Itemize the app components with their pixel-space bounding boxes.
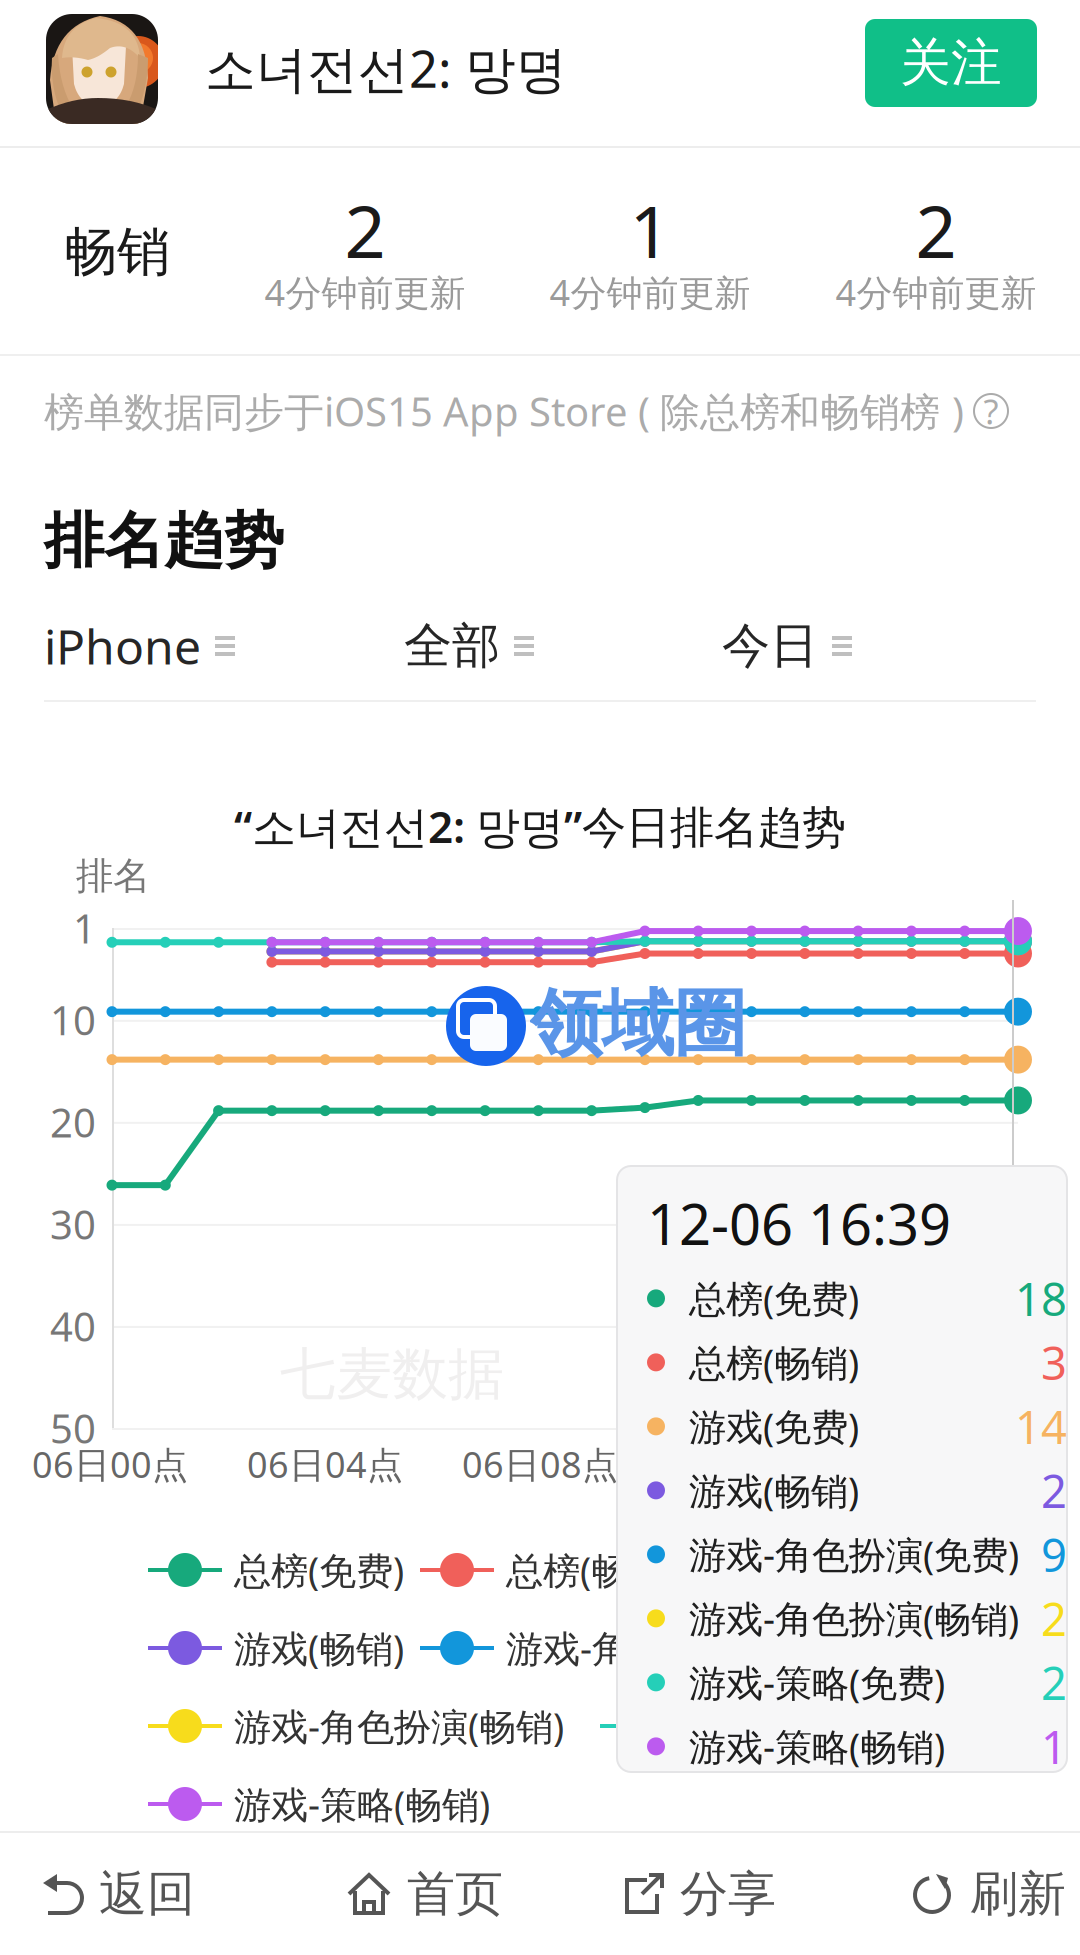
staticText: 返回 xyxy=(99,1864,195,1923)
staticText: 3 xyxy=(1041,1332,1067,1392)
staticText: 50 xyxy=(50,1401,96,1454)
staticText: ? xyxy=(983,388,998,434)
staticText: 06日00点 xyxy=(32,1440,188,1488)
staticText: 总榜(畅销) xyxy=(506,1545,676,1595)
staticText: 七麦数据 xyxy=(280,1340,504,1409)
staticText: 游戏-策略(免费) xyxy=(689,1658,945,1707)
staticText: 2 xyxy=(1041,1652,1067,1712)
button[interactable]: 关注 xyxy=(865,19,1037,107)
staticText: 游戏-角色扮演(畅销) xyxy=(689,1594,1019,1643)
staticText: 游戏-角色扮演(免费) xyxy=(689,1530,1019,1579)
staticText: 1 xyxy=(629,182,670,278)
staticText: 소녀전선2: 망명 xyxy=(205,34,567,102)
staticText: 畅销 xyxy=(64,219,170,285)
staticText: iPhone xyxy=(44,614,201,678)
staticText: 游戏-策略(畅销) xyxy=(689,1722,945,1771)
staticText: 10 xyxy=(50,993,96,1046)
staticText: 4分钟前更新 xyxy=(549,268,750,316)
staticText: 榜单数据同步于iOS15 App Store ( 除总榜和畅销榜 ) xyxy=(44,384,964,437)
staticText: 总榜(畅销) xyxy=(689,1338,859,1387)
staticText: 2 xyxy=(1041,1588,1067,1648)
button[interactable]: 首页 xyxy=(330,1833,520,1955)
staticText: 12-06 16:39 xyxy=(647,1186,951,1260)
button[interactable]: 分享 xyxy=(603,1833,793,1955)
staticText: 排名趋势 xyxy=(44,504,284,578)
staticText: 4分钟前更新 xyxy=(264,268,465,316)
staticText: 首页 xyxy=(407,1864,503,1923)
button[interactable]: 刷新 xyxy=(893,1833,1080,1955)
staticText: 领域圈 xyxy=(530,980,746,1068)
staticText: 总榜(免费) xyxy=(689,1274,859,1323)
staticText: “소녀전선2: 망명”今日排名趋势 xyxy=(234,797,846,855)
staticText: 2 xyxy=(915,182,956,278)
staticText: 分享 xyxy=(680,1864,776,1923)
staticText: 14 xyxy=(1015,1396,1067,1456)
staticText: 全部 xyxy=(404,616,500,675)
staticText: 20 xyxy=(50,1095,96,1148)
staticText: 游戏(畅销) xyxy=(689,1466,859,1515)
staticText: 9 xyxy=(1041,1524,1067,1584)
staticText: 06日08点 xyxy=(462,1440,618,1488)
button[interactable]: 返回 xyxy=(22,1833,212,1955)
staticText: 游戏(免费) xyxy=(686,1701,856,1751)
button[interactable]: 今日 xyxy=(722,616,1022,675)
staticText: 4分钟前更新 xyxy=(835,268,1036,316)
staticText: 2 xyxy=(344,182,385,278)
staticText: 1 xyxy=(73,901,96,954)
staticText: 游戏-角色扮演(免费) xyxy=(506,1623,836,1673)
staticText: 2 xyxy=(1041,1460,1067,1520)
staticText: 06日04点 xyxy=(247,1440,403,1488)
staticText: 40 xyxy=(50,1299,96,1352)
staticText: 游戏(免费) xyxy=(689,1402,859,1451)
staticText: 游戏-角色扮演(畅销) xyxy=(234,1701,564,1751)
staticText: 游戏-策略(畅销) xyxy=(234,1779,490,1829)
staticText: 1 xyxy=(1041,1716,1067,1776)
button[interactable]: 全部 xyxy=(404,616,704,675)
staticText: 总榜(免费) xyxy=(234,1545,404,1595)
staticText: 06日16点 xyxy=(887,1440,1043,1488)
staticText: 排名 xyxy=(76,853,150,899)
staticText: 游戏(畅销) xyxy=(234,1623,404,1673)
staticText: 18 xyxy=(1015,1268,1067,1328)
staticText: 今日 xyxy=(722,616,818,675)
staticText: 刷新 xyxy=(970,1864,1066,1923)
button[interactable]: iPhone xyxy=(44,614,374,678)
staticText: 关注 xyxy=(900,32,1002,94)
staticText: 30 xyxy=(50,1197,96,1250)
